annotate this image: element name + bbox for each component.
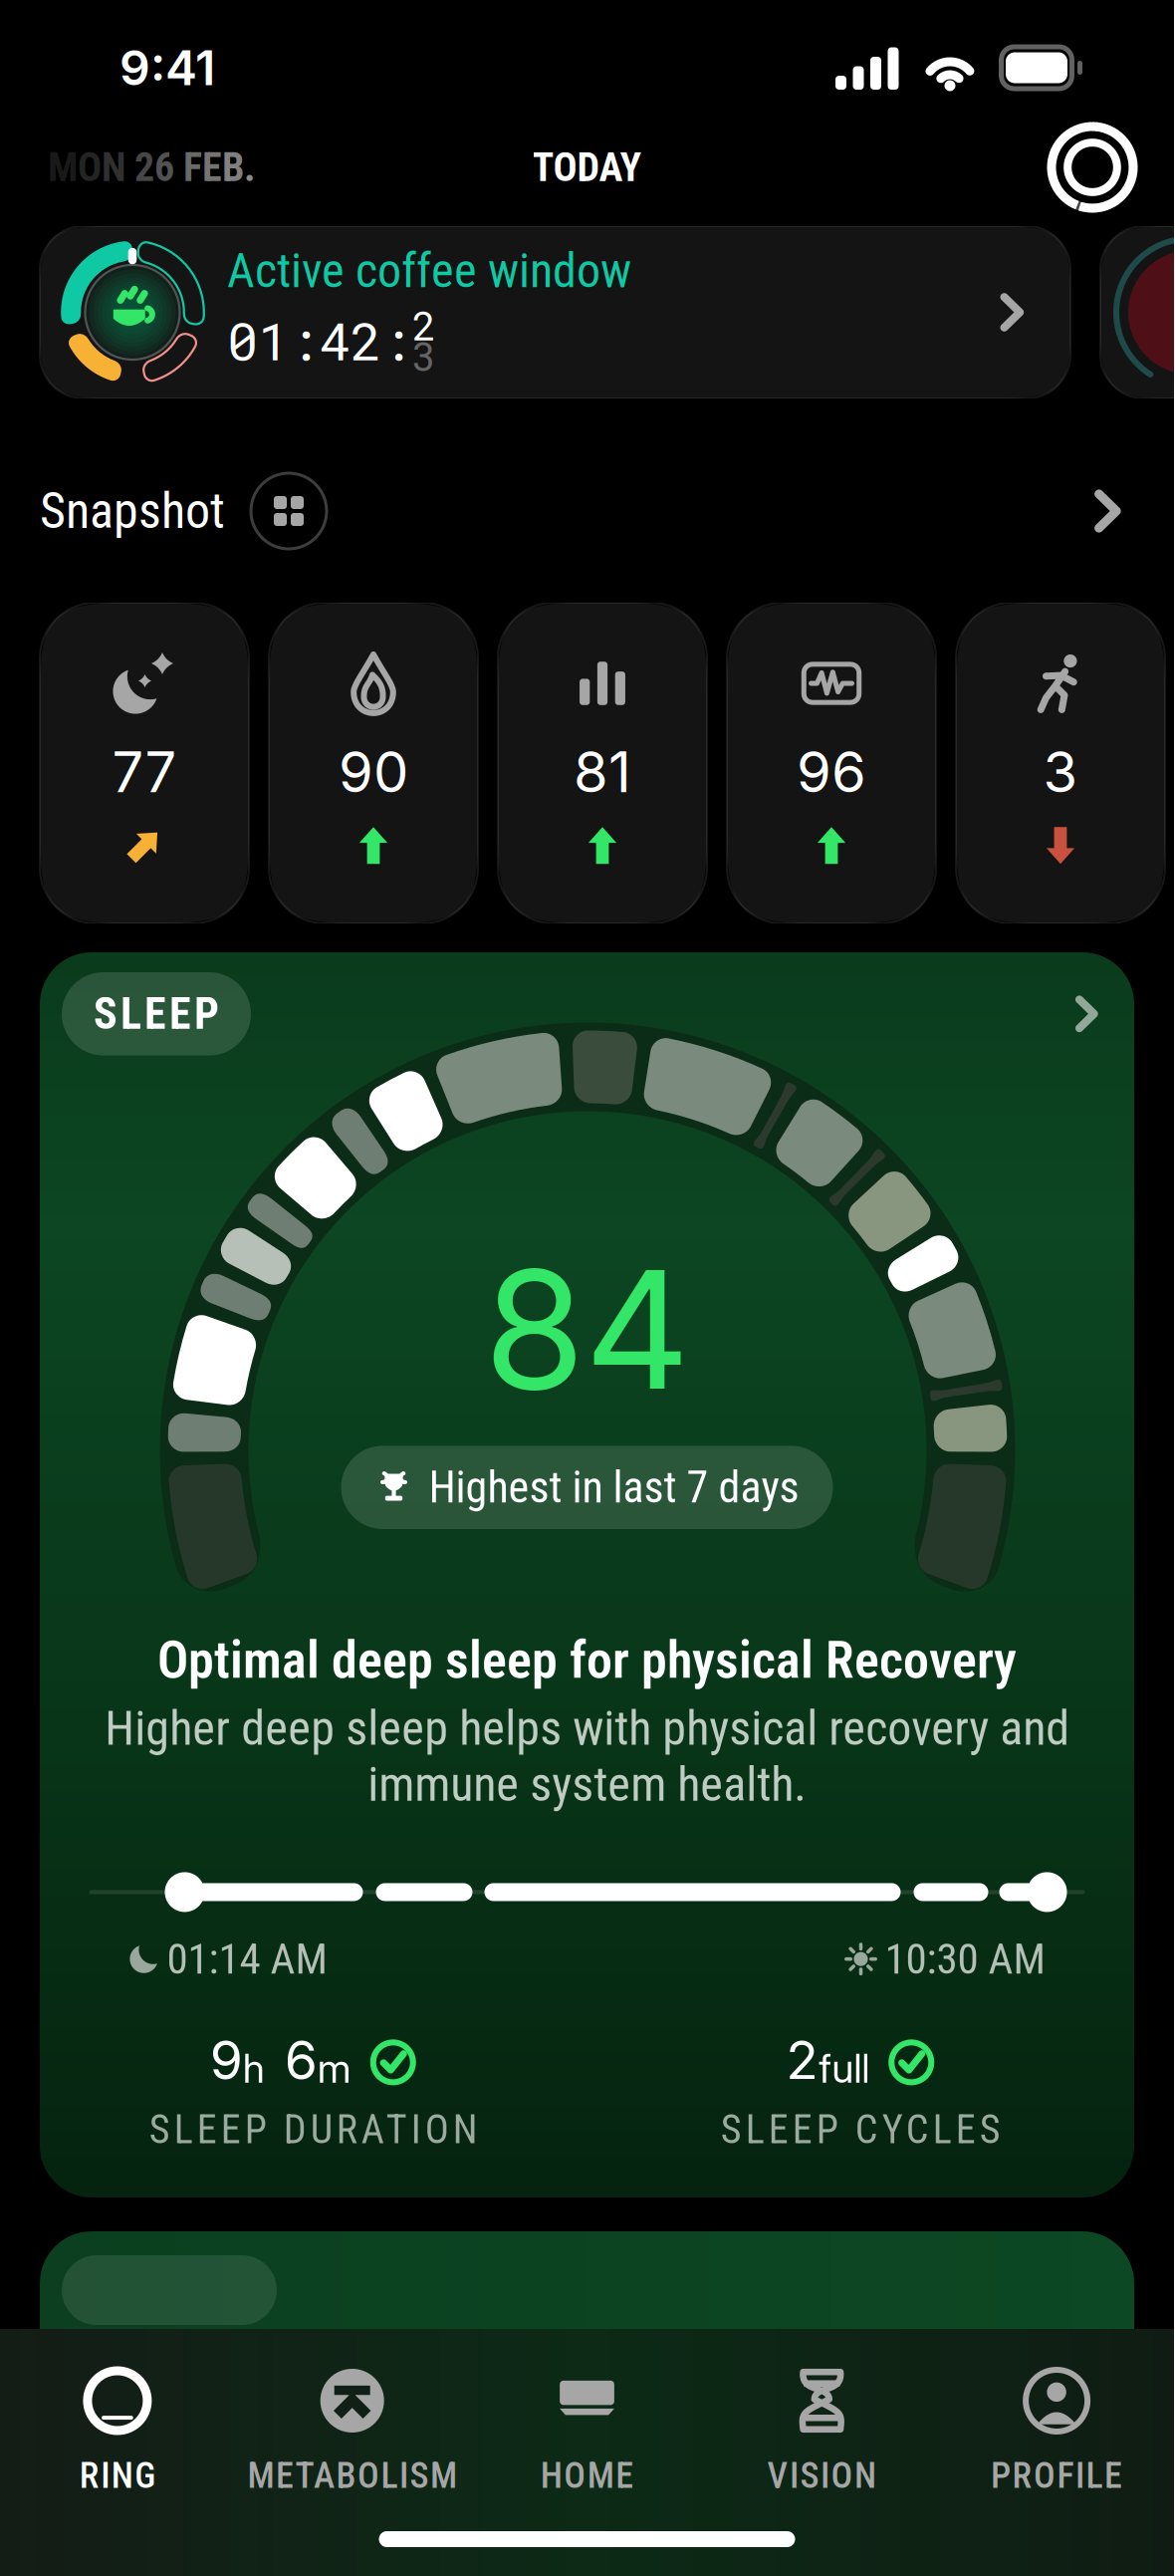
staticText: 01:42: — [227, 306, 412, 374]
staticText: . — [244, 144, 256, 191]
staticText: Highest in last 7 days — [429, 1462, 799, 1513]
staticText: 3 — [1043, 738, 1078, 806]
button[interactable]: 81 — [498, 603, 707, 923]
staticText: Optimal deep sleep for physical Recovery — [157, 1630, 1017, 1690]
button[interactable]: VISION — [704, 2365, 939, 2497]
staticText: 90 — [339, 738, 408, 806]
staticText: SLEEP CYCLES — [721, 2106, 1001, 2153]
staticText: 84 — [484, 1230, 690, 1428]
button[interactable]: 96 — [727, 603, 936, 923]
staticText: N — [102, 144, 125, 191]
staticText: 3 — [412, 329, 436, 382]
staticText: M — [48, 144, 78, 191]
staticText: Higher deep sleep helps with physical re… — [105, 1700, 1069, 1812]
staticText: F — [183, 144, 202, 191]
staticText: 2 — [786, 2028, 819, 2092]
staticText: SLEEP DURATION — [149, 2106, 478, 2153]
staticText: 2 — [412, 299, 436, 351]
staticText: m — [317, 2044, 351, 2092]
staticText: TODAY — [532, 144, 642, 191]
staticText: 10:30 AM — [885, 1934, 1045, 1984]
staticText: 2 — [134, 144, 154, 191]
staticText: O — [78, 144, 102, 191]
staticText: RING — [79, 2454, 156, 2497]
staticText: full — [819, 2044, 870, 2092]
button[interactable]: Heart rate card — [1100, 226, 1175, 398]
staticText: 81 — [574, 738, 631, 806]
staticText: 6 — [285, 2028, 317, 2092]
button[interactable]: 77 — [40, 603, 249, 923]
staticText: PROFILE — [991, 2454, 1122, 2497]
button[interactable]: HOME — [470, 2365, 704, 2497]
button[interactable]: METABOLISM — [235, 2365, 470, 2497]
button[interactable]: PROFILE — [939, 2365, 1174, 2497]
staticText: 6 — [154, 144, 174, 191]
button[interactable]: Ring status — [1033, 108, 1152, 227]
staticText: 9:41 — [119, 39, 215, 97]
staticText: E — [202, 144, 222, 191]
button[interactable]: SLEEP — [40, 952, 1134, 2197]
staticText: METABOLISM — [247, 2454, 457, 2497]
button[interactable]: 90 — [269, 603, 478, 923]
staticText: VISION — [767, 2454, 876, 2497]
button[interactable]: Active coffee window — [40, 226, 1070, 398]
staticText: 01:14 AM — [167, 1934, 327, 1984]
staticText: SLEEP — [94, 988, 219, 1040]
staticText: 96 — [797, 738, 866, 806]
button[interactable]: 3 — [956, 603, 1165, 923]
staticText: Snapshot — [40, 482, 225, 540]
staticText: Active coffee window — [227, 243, 631, 299]
staticText: B — [222, 144, 244, 191]
staticText: h — [243, 2044, 265, 2092]
button[interactable]: Snapshot — [0, 441, 1174, 581]
button[interactable]: RING — [0, 2365, 235, 2497]
staticText: HOME — [540, 2454, 634, 2497]
staticText: 77 — [112, 738, 177, 806]
staticText: 9 — [210, 2028, 243, 2092]
